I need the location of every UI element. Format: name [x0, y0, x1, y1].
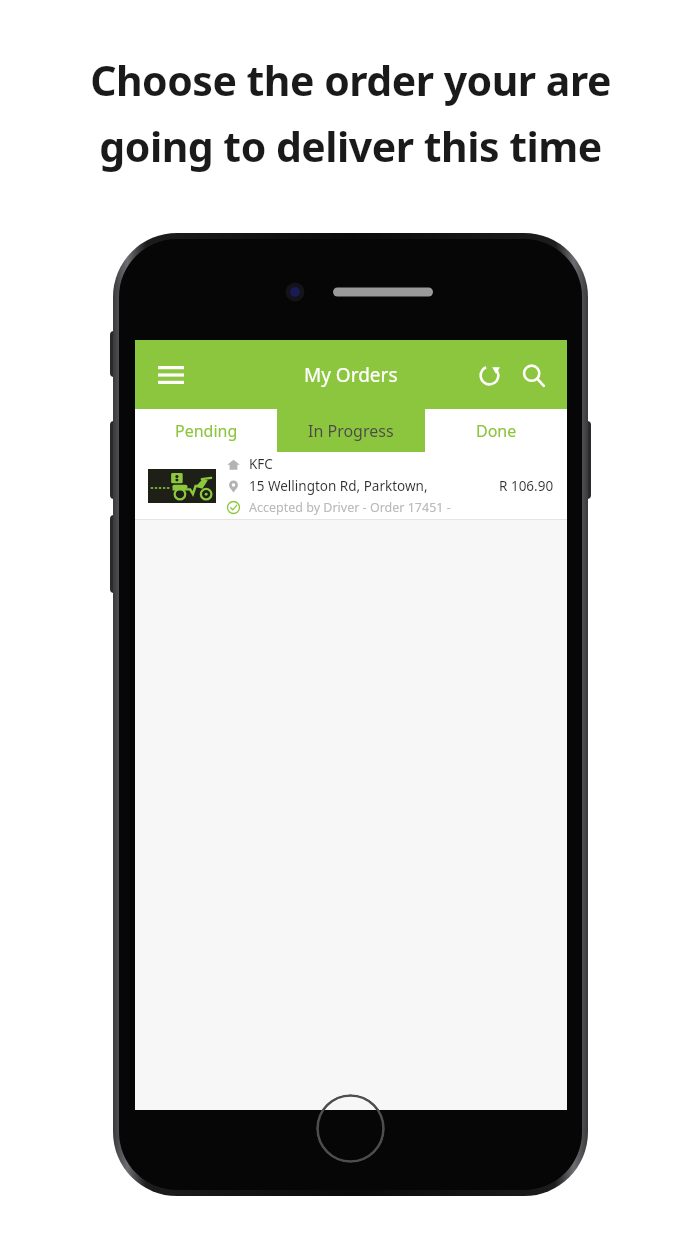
- button[interactable]: Search: [511, 353, 555, 397]
- staticText: going to deliver this time: [99, 118, 602, 174]
- staticText: Pending: [175, 420, 238, 442]
- staticText: KFC: [249, 455, 273, 473]
- button[interactable]: Refresh: [467, 353, 511, 397]
- staticText: R 106.90: [499, 477, 554, 495]
- button[interactable]: Home: [316, 1094, 385, 1163]
- button[interactable]: KFC: [135, 452, 567, 519]
- button[interactable]: Open navigation menu: [149, 353, 193, 397]
- staticText: Accepted by Driver - Order 17451 - 2019/…: [249, 499, 499, 516]
- staticText: Choose the order your are: [90, 52, 611, 108]
- staticText: 15 Wellington Rd, Parktown, Johannesbu: [249, 477, 499, 495]
- staticText: Done: [476, 420, 517, 442]
- staticText: My Orders: [304, 362, 398, 388]
- button[interactable]: Done: [425, 409, 567, 452]
- button[interactable]: In Progress: [277, 409, 425, 452]
- button[interactable]: Pending: [135, 409, 277, 452]
- staticText: In Progress: [308, 420, 394, 442]
